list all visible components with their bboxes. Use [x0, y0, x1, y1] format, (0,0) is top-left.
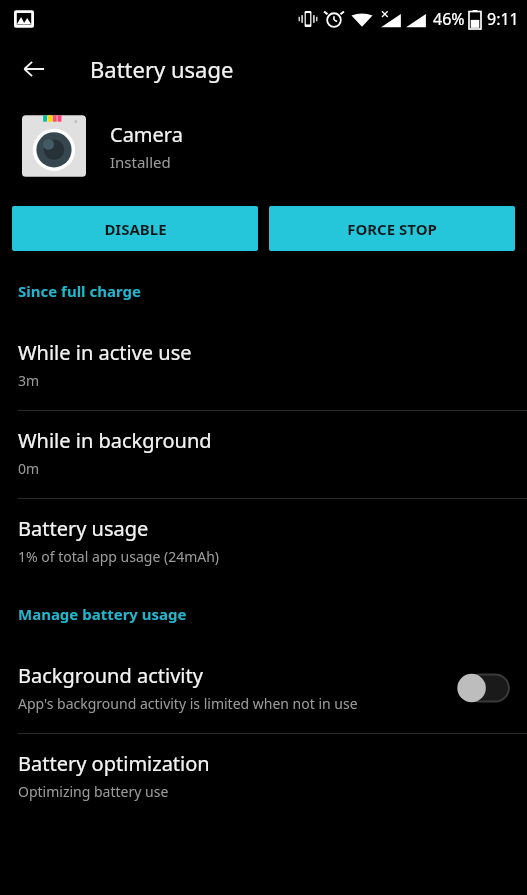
button[interactable]: While in active use: [0, 323, 527, 410]
staticText: 0m: [18, 459, 40, 478]
button[interactable]: While in background: [0, 411, 527, 498]
staticText: Optimizing battery use: [18, 782, 169, 801]
staticText: 1% of total app usage (24mAh): [18, 547, 220, 566]
staticText: Battery usage: [18, 515, 149, 542]
staticText: While in background: [18, 427, 212, 454]
staticText: FORCE STOP: [347, 219, 437, 239]
staticText: Battery usage: [90, 54, 234, 84]
staticText: Manage battery usage: [18, 604, 187, 624]
button[interactable]: Background activity: [0, 646, 527, 733]
staticText: Camera: [110, 121, 183, 148]
staticText: 46%: [433, 8, 465, 30]
staticText: 9:11: [487, 8, 519, 30]
button[interactable]: Back: [12, 47, 56, 91]
button[interactable]: FORCE STOP: [269, 206, 515, 251]
staticText: App's background activity is limited whe…: [18, 694, 358, 713]
staticText: 3m: [18, 371, 40, 390]
staticText: Battery optimization: [18, 750, 210, 777]
button[interactable]: DISABLE: [12, 206, 258, 251]
button[interactable]: Battery usage: [0, 499, 527, 586]
staticText: Since full charge: [18, 281, 141, 301]
button[interactable]: Camera: [0, 100, 527, 192]
button[interactable]: Battery optimization: [0, 734, 527, 821]
staticText: Installed: [110, 152, 171, 172]
staticText: While in active use: [18, 339, 192, 366]
staticText: Background activity: [18, 662, 203, 689]
staticText: DISABLE: [104, 219, 167, 239]
button[interactable]: Background activity toggle: [457, 671, 511, 705]
